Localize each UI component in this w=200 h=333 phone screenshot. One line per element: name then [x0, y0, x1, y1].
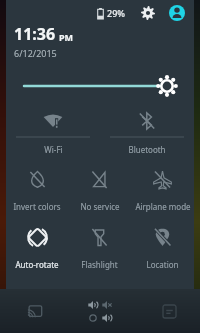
button[interactable]: Flashlight [68, 220, 131, 278]
staticText: 11:36 [14, 23, 56, 45]
staticText: Flashlight [81, 259, 118, 270]
staticText: Wi-Fi [44, 144, 63, 155]
button[interactable]: Airplane mode [131, 162, 194, 220]
staticText: Auto-rotate [15, 259, 59, 270]
staticText: 6/12/2015 [14, 47, 57, 59]
staticText: Location [146, 259, 179, 270]
button[interactable]: Recents [158, 300, 180, 322]
button[interactable]: Settings [137, 2, 159, 24]
button[interactable]: Cast screen [22, 299, 46, 323]
button[interactable]: User profile [166, 2, 188, 24]
staticText: Invert colors [13, 201, 61, 212]
staticText: 29% [107, 7, 125, 19]
staticText: PM [59, 31, 74, 43]
staticText: Bluetooth [128, 144, 166, 155]
staticText: Airplane mode [135, 201, 191, 212]
button[interactable]: No service [68, 162, 131, 220]
button[interactable]: Auto-rotate [6, 220, 68, 278]
staticText: No service [80, 201, 120, 212]
button[interactable]: Location [131, 220, 194, 278]
button[interactable]: Brightness [6, 68, 194, 104]
button[interactable]: Bluetooth [100, 104, 194, 162]
button[interactable]: Invert colors [6, 162, 68, 220]
button[interactable]: Wi-Fi [6, 104, 100, 162]
